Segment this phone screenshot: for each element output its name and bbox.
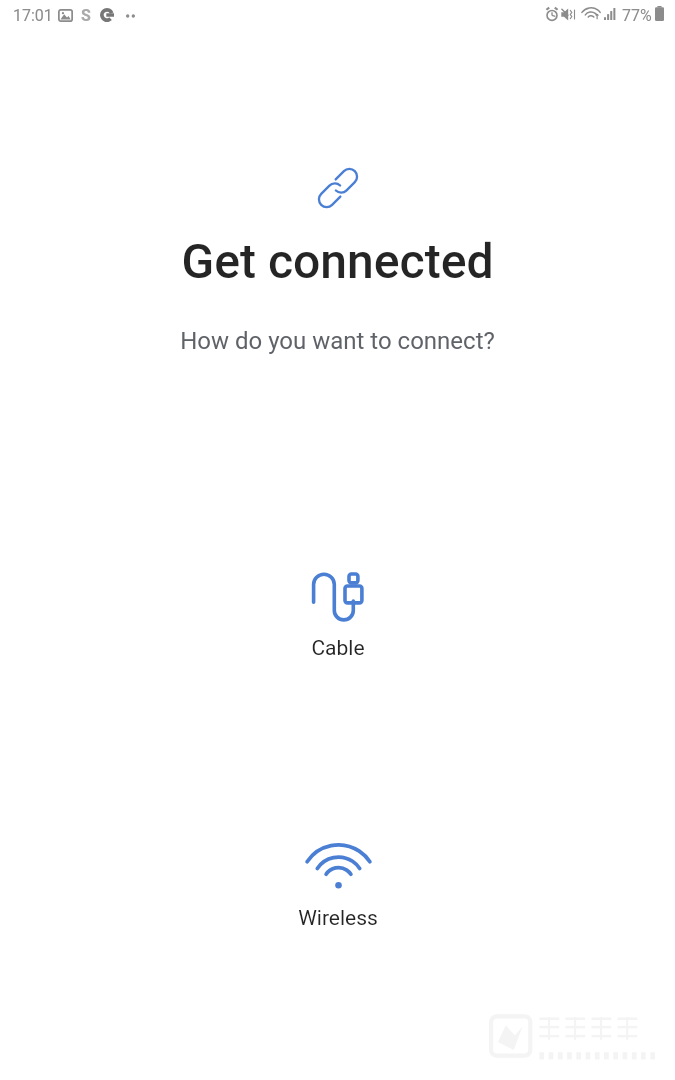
button[interactable]: Cable	[255, 566, 421, 667]
staticText: How do you want to connect?	[180, 327, 495, 355]
staticText: Cable	[311, 636, 365, 661]
staticText: Wireless	[298, 906, 378, 931]
other: Link	[316, 166, 360, 210]
staticText: S	[81, 6, 91, 25]
staticText: 77%	[622, 6, 652, 25]
staticText: Get connected	[181, 233, 494, 289]
staticText: 17:01	[13, 6, 53, 25]
button[interactable]: Wireless	[242, 837, 434, 937]
